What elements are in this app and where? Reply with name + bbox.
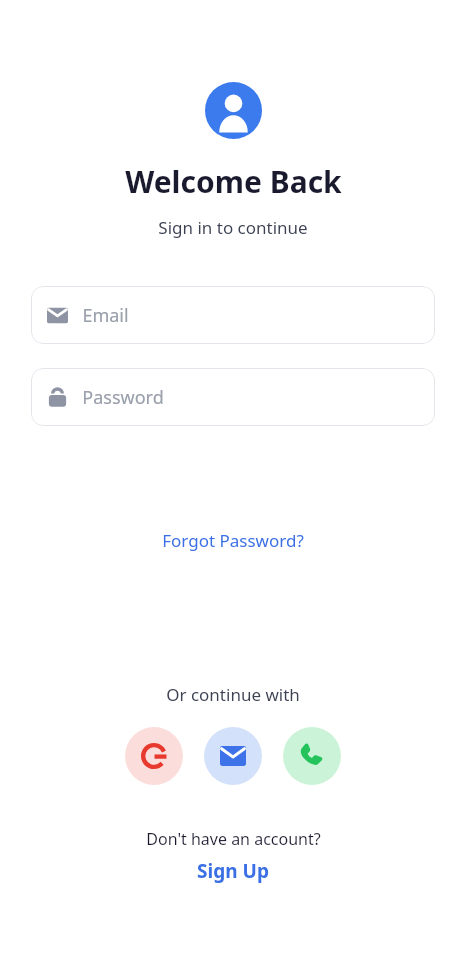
button[interactable]: Sign in with Email (204, 727, 262, 785)
other: Profile avatar (205, 82, 262, 139)
button[interactable]: Sign in with Google (125, 727, 183, 785)
staticText: Sign Up (197, 858, 269, 884)
staticText: Or continue with (166, 683, 300, 706)
button[interactable]: Email (31, 286, 435, 344)
button[interactable]: Sign Up (187, 856, 279, 886)
staticText: Welcome Back (125, 161, 342, 202)
staticText: Email (82, 303, 129, 328)
staticText: Password (82, 385, 164, 410)
button[interactable]: Password (31, 368, 435, 426)
staticText: Don't have an account? (146, 828, 321, 850)
button[interactable]: Sign in with Phone (283, 727, 341, 785)
staticText: Forgot Password? (162, 529, 304, 552)
button[interactable]: Forgot Password? (154, 525, 312, 556)
staticText: Sign in to continue (158, 216, 308, 239)
